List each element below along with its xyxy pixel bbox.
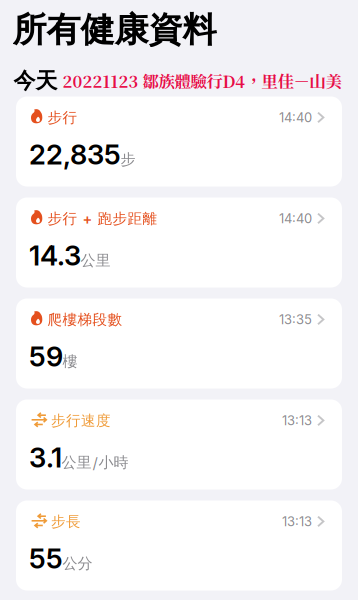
- staticText: 步: [120, 150, 135, 169]
- staticText: 20221123 鄒族體驗行D4，里佳－山美: [62, 69, 341, 92]
- staticText: 爬樓梯段數: [47, 310, 122, 329]
- staticText: 14:40: [279, 110, 312, 125]
- staticText: 公里: [80, 251, 110, 270]
- staticText: 14:40: [279, 211, 312, 226]
- button[interactable]: 步行 + 跑步距離: [16, 197, 342, 287]
- staticText: 步長: [51, 512, 81, 531]
- staticText: 13:35: [279, 312, 312, 327]
- staticText: 14.3: [29, 239, 81, 272]
- staticText: 13:13: [282, 514, 312, 529]
- staticText: 公里 / 小時: [61, 453, 128, 472]
- staticText: 樓: [62, 352, 77, 371]
- staticText: 22,835: [29, 138, 121, 171]
- staticText: 公分: [62, 554, 92, 573]
- button[interactable]: 步行速度: [16, 399, 342, 489]
- button[interactable]: 步行: [16, 96, 342, 186]
- staticText: 步行速度: [51, 411, 111, 430]
- staticText: 55: [29, 542, 63, 575]
- staticText: 59: [29, 340, 63, 373]
- button[interactable]: 步長: [16, 500, 342, 590]
- staticText: 13:13: [282, 413, 312, 428]
- staticText: 步行 + 跑步距離: [47, 209, 157, 228]
- staticText: 3.1: [29, 441, 62, 474]
- staticText: 今天: [13, 67, 57, 94]
- button[interactable]: 爬樓梯段數: [16, 298, 342, 388]
- staticText: 步行: [47, 108, 77, 127]
- staticText: 所有健康資料: [12, 8, 216, 51]
